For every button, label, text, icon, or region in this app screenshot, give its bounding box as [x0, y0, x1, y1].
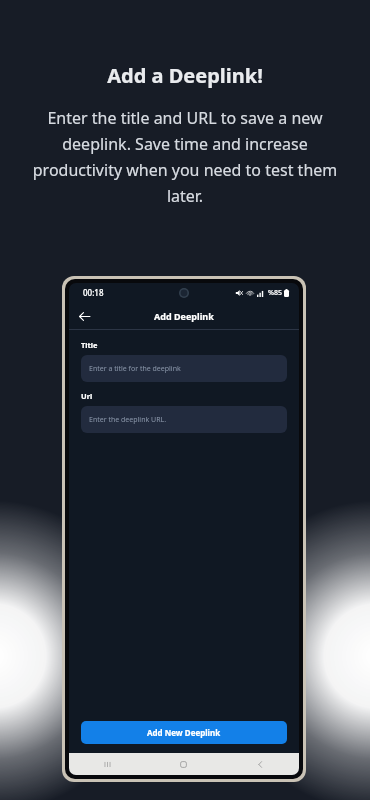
button[interactable]: Add New Deeplink: [81, 721, 287, 744]
button[interactable]: Enter a title for the deeplink: [81, 355, 287, 382]
button[interactable]: Home: [145, 753, 222, 775]
staticText: 00:18: [83, 287, 104, 298]
staticText: Title: [81, 340, 98, 350]
staticText: Url: [81, 391, 93, 401]
button[interactable]: Back: [73, 305, 95, 327]
staticText: Enter the deeplink URL.: [89, 415, 167, 425]
staticText: Enter the title and URL to save a new de…: [26, 107, 344, 207]
staticText: Add New Deeplink: [147, 727, 221, 738]
staticText: Enter a title for the deeplink: [89, 364, 181, 374]
button[interactable]: Enter the deeplink URL.: [81, 406, 287, 433]
staticText: Add Deeplink: [154, 310, 214, 322]
staticText: %85: [268, 288, 282, 298]
button[interactable]: Recents: [69, 753, 145, 775]
staticText: Add a Deeplink!: [107, 62, 263, 89]
button[interactable]: Back: [222, 753, 299, 775]
